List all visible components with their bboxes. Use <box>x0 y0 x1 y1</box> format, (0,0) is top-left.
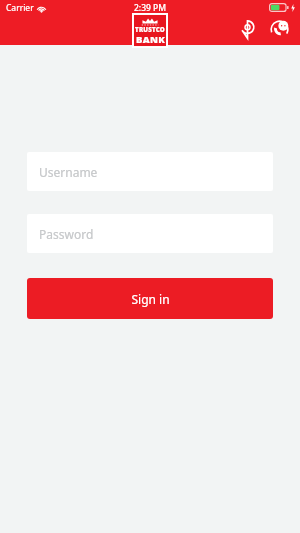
staticText: Username <box>39 164 98 180</box>
button[interactable]: TRUSTCO <box>132 13 168 48</box>
staticText: Sign in <box>131 291 170 307</box>
staticText: Carrier <box>6 2 34 14</box>
staticText: Password <box>39 226 94 242</box>
button[interactable]: Password <box>27 214 273 253</box>
staticText: TRUSTCO <box>135 25 165 33</box>
staticText: 2:39 PM <box>134 2 167 14</box>
button[interactable]: Call 24 hour support <box>266 16 292 42</box>
button[interactable]: Find a branch <box>234 16 260 42</box>
button[interactable]: Username <box>27 152 273 191</box>
button[interactable]: Sign in <box>27 278 273 319</box>
staticText: BANK <box>136 33 165 46</box>
